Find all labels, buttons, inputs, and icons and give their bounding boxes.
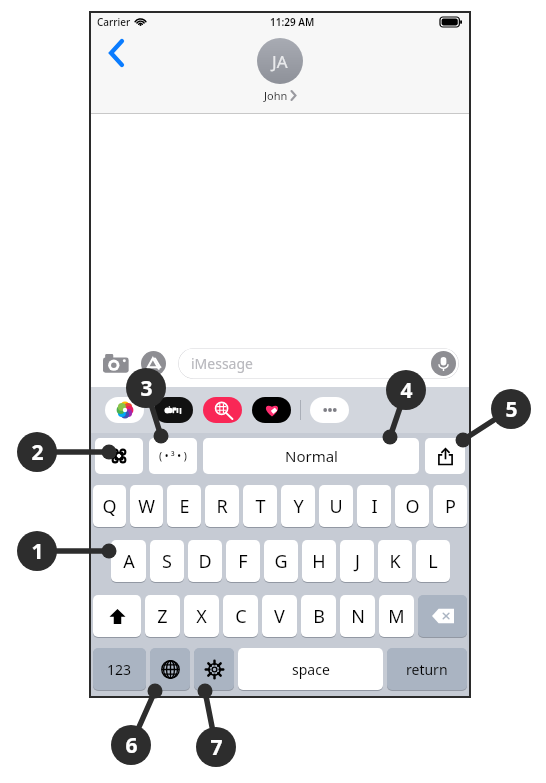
button[interactable]: Delete [418,595,467,637]
button[interactable]: Callout 1 [17,531,57,571]
button[interactable]: E [167,485,201,527]
button[interactable]: iMessage app [252,397,291,423]
button[interactable]: F [226,540,260,582]
button[interactable]: iMessage [178,348,459,379]
button[interactable]: Callout 5 [491,389,531,429]
button[interactable]: Next keyboard [150,648,190,690]
button[interactable]: A [111,540,146,582]
staticText: N [351,604,365,629]
button[interactable]: Q [93,485,126,527]
staticText: Y [293,494,304,519]
staticText: E [179,494,190,519]
staticText: 123 [107,660,132,679]
staticText: P [445,494,456,519]
staticText: 6 [125,731,138,760]
button[interactable]: Dictate [431,351,456,376]
button[interactable]: V [262,595,297,637]
button[interactable]: Settings [194,648,234,690]
staticText: X [196,604,207,629]
button[interactable]: iMessage app [203,397,242,423]
button[interactable]: W [130,485,163,527]
button[interactable]: B [301,595,336,637]
staticText: John [264,88,288,103]
button[interactable]: Y [281,485,315,527]
button[interactable]: Keyboard option [149,438,197,474]
staticText: space [292,660,330,679]
staticText: O [405,494,420,519]
button[interactable]: K [378,540,412,582]
staticText: 11:29 AM [270,15,315,29]
staticText: 4 [400,376,413,405]
staticText: iMessage [191,354,253,373]
button[interactable]: Keyboard option [425,438,465,474]
staticText: 5 [505,395,518,424]
button[interactable]: Keyboard option [95,438,143,474]
staticText: G [274,549,288,574]
button[interactable]: Normal [203,438,419,474]
staticText: return [406,660,448,679]
button[interactable]: S [150,540,184,582]
button[interactable]: P [433,485,467,527]
staticText: Normal [285,446,338,466]
button[interactable]: iMessage app [154,397,193,423]
button[interactable]: Z [145,595,180,637]
button[interactable]: H [302,540,336,582]
staticText: L [428,549,438,574]
staticText: ( • ³ • ) [159,449,187,463]
staticText: S [162,549,172,574]
button[interactable]: Numbers [93,648,146,690]
staticText: I [371,494,378,519]
staticText: F [238,549,248,574]
staticText: JA [272,50,288,73]
staticText: A [123,549,135,574]
staticText: J [355,549,360,574]
staticText: Q [102,494,117,519]
button[interactable]: Callout 7 [196,727,236,767]
button[interactable]: Callout 4 [386,370,426,410]
button[interactable]: Callout 3 [126,368,166,408]
button[interactable]: L [416,540,450,582]
button[interactable]: C [223,595,258,637]
staticText: 3 [140,374,153,403]
staticText: K [389,549,401,574]
staticText: M [388,604,405,629]
button[interactable]: Back [99,36,133,70]
staticText: 7 [210,733,223,762]
staticText: H [312,549,326,574]
button[interactable]: iMessage app [310,397,349,423]
button[interactable]: return [387,648,467,690]
button[interactable]: Camera [101,348,131,378]
button[interactable]: O [395,485,429,527]
staticText: D [198,549,212,574]
button[interactable]: J [340,540,374,582]
button[interactable]: App Store [140,350,167,377]
button[interactable]: T [243,485,277,527]
button[interactable]: M [379,595,414,637]
staticText: C [235,604,247,629]
staticText: B [313,604,325,629]
button[interactable]: X [184,595,219,637]
staticText: T [255,494,266,519]
staticText: R [216,494,228,519]
staticText: W [138,494,155,519]
button[interactable]: R [205,485,239,527]
button[interactable]: G [264,540,298,582]
button[interactable]: D [188,540,222,582]
button[interactable]: iMessage app [105,397,144,423]
button[interactable]: space [238,648,383,690]
button[interactable]: Shift [93,595,141,637]
button[interactable]: JA [257,38,303,103]
button[interactable]: Callout 6 [111,725,151,765]
staticText: U [329,494,343,519]
staticText: V [274,604,285,629]
staticText: Carrier [97,15,131,29]
staticText: 1 [31,537,44,566]
staticText: Z [157,604,168,629]
button[interactable]: N [340,595,375,637]
staticText: 2 [31,438,44,467]
button[interactable]: Callout 2 [17,432,57,472]
button[interactable]: U [319,485,353,527]
button[interactable]: I [357,485,391,527]
